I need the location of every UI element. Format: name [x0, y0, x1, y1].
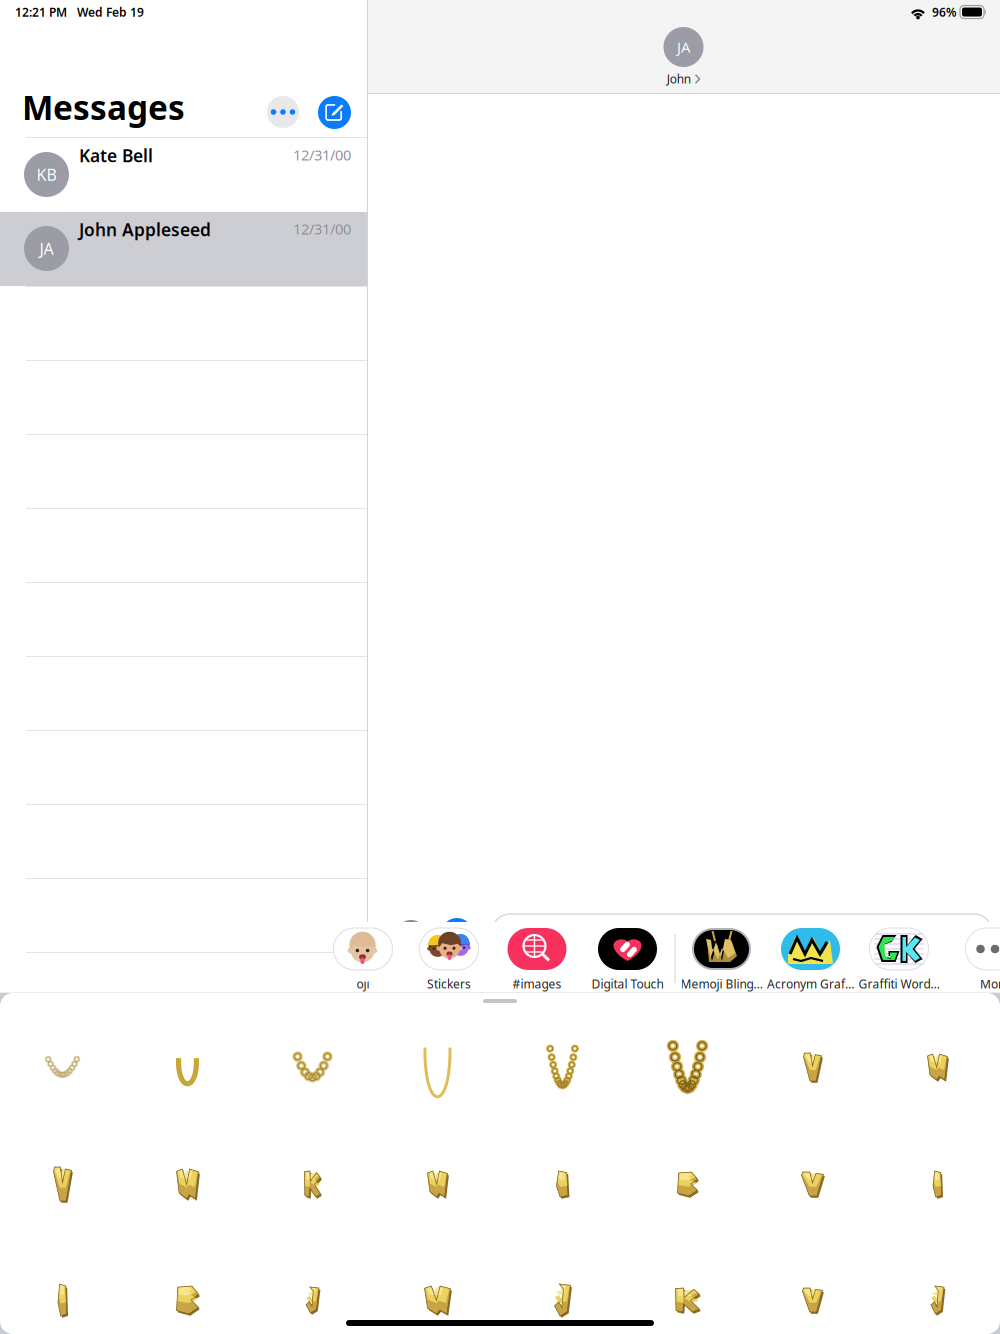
- staticText: Graffiti Word…: [858, 976, 939, 992]
- staticText: John Appleseed: [79, 218, 211, 241]
- staticText: John: [667, 71, 691, 87]
- staticText: Wed Feb 19: [77, 4, 144, 20]
- button[interactable]: Graffiti Word…: [855, 922, 943, 993]
- staticText: Memoji Bling…: [680, 976, 762, 992]
- staticText: #images: [512, 976, 561, 992]
- button[interactable]: Stickers: [406, 922, 492, 993]
- staticText: oji: [356, 976, 369, 992]
- staticText: Acronym Graf…: [767, 976, 854, 992]
- staticText: JA: [677, 37, 690, 57]
- staticText: Kate Bell: [79, 144, 153, 167]
- staticText: Stickers: [427, 976, 471, 992]
- button[interactable]: Memoji Bling…: [677, 922, 766, 993]
- staticText: JA: [39, 238, 53, 259]
- staticText: 12:21 PM: [15, 4, 67, 20]
- button[interactable]: JA: [0, 212, 367, 286]
- button[interactable]: John, conversation details: [367, 0, 1000, 94]
- button[interactable]: Digital Touch: [582, 922, 673, 993]
- staticText: Digital Touch: [591, 976, 663, 992]
- staticText: Messages: [22, 85, 185, 129]
- staticText: 12/31/00: [293, 145, 351, 164]
- button[interactable]: oji: [320, 922, 406, 993]
- staticText: 12/31/00: [293, 219, 351, 238]
- button[interactable]: KB: [0, 138, 367, 212]
- staticText: 96%: [932, 4, 957, 20]
- staticText: More: [980, 976, 1000, 992]
- button[interactable]: More options: [267, 96, 299, 128]
- button[interactable]: Acronym Graf…: [766, 922, 855, 993]
- button[interactable]: #images: [492, 922, 582, 993]
- button[interactable]: Compose new message: [318, 96, 351, 129]
- button[interactable]: More: [943, 922, 1000, 993]
- staticText: KB: [36, 164, 56, 185]
